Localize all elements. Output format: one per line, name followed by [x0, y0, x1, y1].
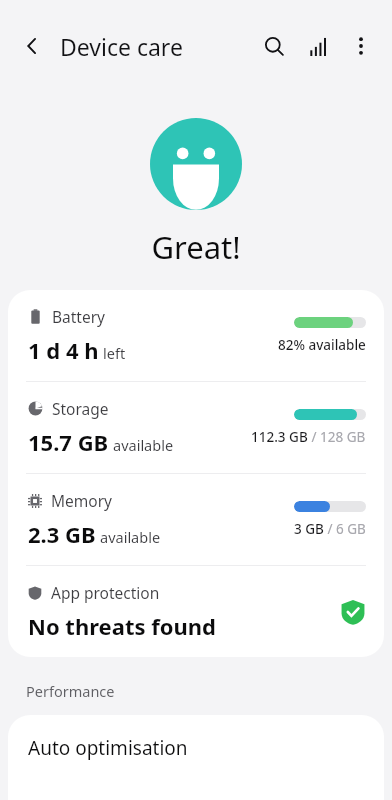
- staticText: No threats found: [28, 611, 216, 641]
- button[interactable]: Memory: [8, 474, 384, 565]
- staticText: 112.3 GB: [251, 428, 308, 446]
- staticText: Battery: [52, 306, 106, 327]
- button[interactable]: Back: [12, 26, 52, 66]
- button[interactable]: Auto optimisation: [8, 715, 384, 800]
- staticText: 15.7 GB: [28, 427, 109, 457]
- staticText: Storage: [52, 398, 109, 419]
- button[interactable]: More options: [340, 24, 382, 68]
- staticText: Device care: [60, 31, 183, 62]
- button[interactable]: Battery: [8, 290, 384, 381]
- staticText: Great!: [151, 226, 241, 268]
- staticText: / 6 GB: [324, 520, 366, 538]
- staticText: / 128 GB: [308, 428, 366, 446]
- staticText: 3 GB: [294, 520, 324, 538]
- button[interactable]: Usage statistics: [296, 24, 340, 68]
- button[interactable]: App protection: [8, 566, 384, 657]
- staticText: Memory: [51, 490, 112, 511]
- button[interactable]: Search: [252, 24, 296, 68]
- staticText: 2.3 GB: [28, 519, 96, 549]
- staticText: available: [100, 527, 161, 547]
- staticText: App protection: [51, 582, 160, 603]
- staticText: Auto optimisation: [28, 735, 188, 761]
- button[interactable]: Storage: [8, 382, 384, 473]
- staticText: left: [103, 343, 126, 363]
- staticText: Performance: [26, 681, 115, 701]
- staticText: 1 d 4 h: [28, 335, 99, 365]
- staticText: 82% available: [278, 336, 366, 354]
- staticText: available: [113, 435, 174, 455]
